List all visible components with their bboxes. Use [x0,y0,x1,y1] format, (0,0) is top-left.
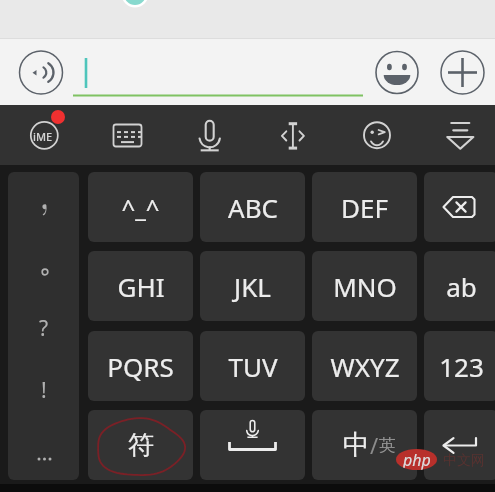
staticText: TUV [228,349,278,384]
button[interactable]: Emoticons [362,109,392,139]
staticText: / [370,430,379,460]
button[interactable]: Keyboard layout [113,109,143,139]
staticText: ! [41,376,47,400]
button[interactable]: Message input field [73,47,365,97]
button[interactable]: Punctuation [8,172,79,480]
staticText: 中文网 [443,452,485,470]
staticText: iME [33,129,53,144]
button[interactable]: WXYZ [312,331,417,401]
staticText: ^_^ [121,191,160,224]
staticText: WXYZ [330,349,400,384]
staticText: GHI [117,269,165,304]
button[interactable]: PQRS [88,331,193,401]
button[interactable]: ab [424,251,495,321]
button[interactable]: DEF [312,172,417,242]
button[interactable]: GHI [88,251,193,321]
button[interactable]: Voice input [195,109,225,139]
button[interactable]: Move cursor [278,109,308,139]
button[interactable]: Emoji [376,51,419,94]
button[interactable]: JKL [200,251,305,321]
button[interactable]: 123 [424,331,495,401]
button[interactable]: TUV [200,331,305,401]
button[interactable]: Input method menu [29,109,59,139]
staticText: ? [39,314,49,338]
button[interactable]: Backspace [424,172,495,242]
button[interactable]: 符 [88,410,193,480]
button[interactable]: Switch Chinese or English [312,410,417,480]
staticText: php [403,449,431,470]
button[interactable]: Space [200,410,305,480]
staticText: MNO [333,269,397,304]
button[interactable]: ^_^ [88,172,193,242]
staticText: 英 [379,435,396,456]
staticText: PQRS [107,349,174,384]
button[interactable]: MNO [312,251,417,321]
staticText: 中 [343,428,370,462]
staticText: DEF [341,190,388,225]
button[interactable]: Enter [424,410,495,480]
staticText: 符 [128,429,154,462]
staticText: JKL [234,269,271,304]
staticText: ABC [228,190,278,225]
staticText: 123 [439,349,484,384]
button[interactable]: Hide keyboard [445,109,475,139]
button[interactable]: Voice message [19,51,63,95]
staticText: ab [446,269,477,304]
button[interactable]: More [441,51,485,95]
button[interactable]: ABC [200,172,305,242]
